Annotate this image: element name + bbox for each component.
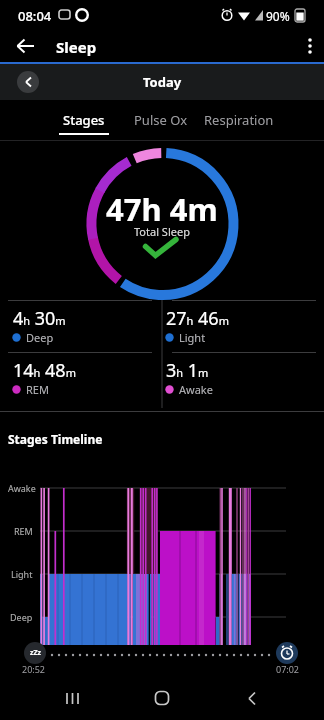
staticText: Awake (8, 482, 36, 494)
button[interactable]: zZz (24, 642, 46, 664)
button[interactable] (8, 30, 44, 62)
staticText: 20:52 (22, 663, 46, 675)
button[interactable] (296, 30, 324, 62)
staticText: 47h 4m (106, 188, 218, 230)
button[interactable] (140, 676, 184, 720)
staticText: Deep (26, 330, 54, 345)
staticText: Stages (63, 111, 105, 129)
staticText: 90% (266, 8, 290, 24)
staticText: Stages Timeline (8, 431, 103, 447)
staticText: Deep (10, 611, 33, 623)
staticText: Respiration (204, 111, 274, 129)
staticText: 14h 48m (13, 358, 76, 383)
staticText: Awake (179, 382, 213, 397)
button[interactable] (230, 676, 274, 720)
button[interactable]: Respiration (202, 100, 276, 140)
staticText: Light (179, 330, 206, 345)
staticText: Total Sleep (134, 224, 190, 239)
staticText: REM (14, 525, 33, 537)
staticText: 3h 1m (166, 358, 209, 383)
staticText: Sleep (56, 37, 97, 57)
button[interactable]: 27h 46m (153, 303, 303, 355)
staticText: Light (11, 568, 33, 580)
staticText: REM (26, 382, 49, 397)
staticText: Pulse Ox (134, 111, 188, 129)
button[interactable]: Stages (51, 100, 117, 140)
button[interactable]: 3h 1m (153, 355, 303, 407)
staticText: 07:02 (276, 663, 300, 675)
button[interactable]: Pulse Ox (128, 100, 194, 140)
button[interactable] (50, 676, 94, 720)
button[interactable]: 14h 48m (0, 355, 150, 407)
button[interactable]: 4h 30m (0, 303, 150, 355)
button[interactable] (17, 71, 39, 93)
staticText: 27h 46m (166, 306, 229, 331)
staticText: 08:04 (18, 7, 52, 25)
staticText: zZz (30, 648, 41, 658)
staticText: 4h 30m (13, 306, 66, 331)
staticText: Today (143, 73, 182, 91)
